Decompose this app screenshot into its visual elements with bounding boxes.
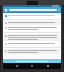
button[interactable] (5, 35, 59, 40)
button[interactable] (5, 50, 59, 53)
button[interactable]: Home (30, 64, 34, 68)
button[interactable] (3, 59, 61, 63)
button[interactable] (5, 43, 59, 45)
button[interactable]: Back (15, 64, 19, 68)
button[interactable] (5, 15, 59, 17)
button[interactable]: Navigation menu (4, 8, 8, 12)
button[interactable]: Navigation menu (3, 7, 61, 12)
button[interactable]: Recents (46, 64, 50, 68)
button[interactable] (5, 22, 59, 24)
button[interactable] (5, 27, 59, 30)
